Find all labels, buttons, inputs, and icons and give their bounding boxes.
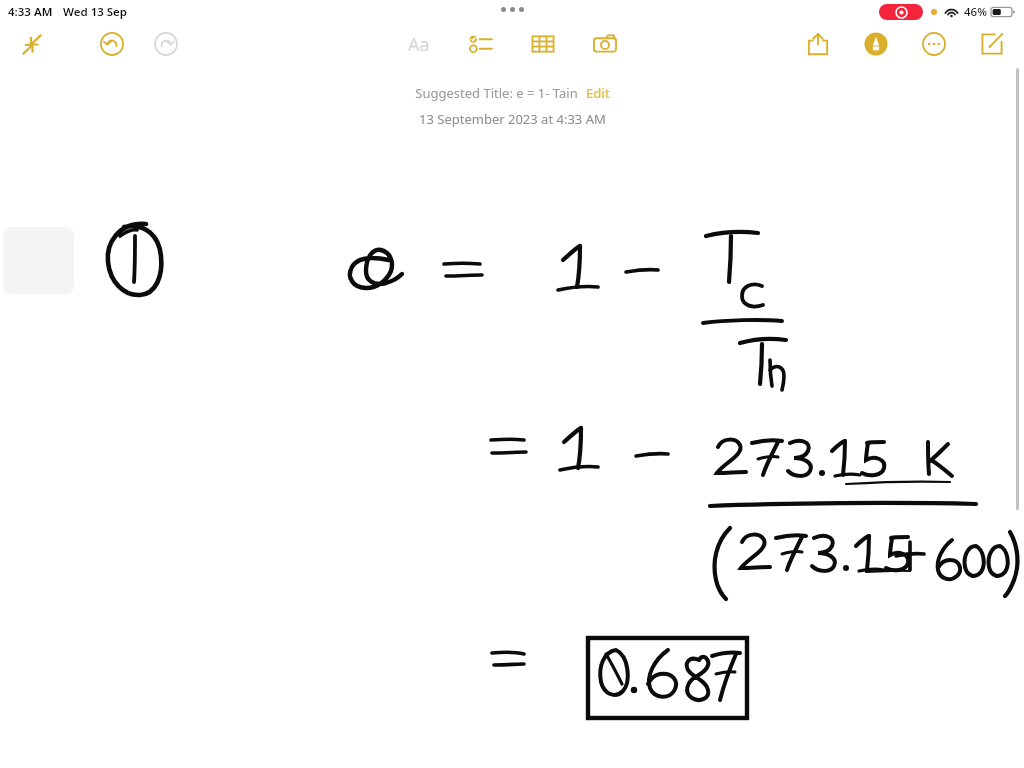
other: Screen recording [879, 4, 923, 20]
staticText: Wed 13 Sep [63, 4, 128, 20]
staticText: Aa [408, 32, 430, 57]
button[interactable]: Undo [94, 26, 130, 62]
button[interactable]: Edit [586, 84, 610, 102]
button[interactable]: Collapse [14, 26, 50, 62]
button[interactable]: Table [525, 26, 561, 62]
button[interactable]: Camera [587, 26, 623, 62]
staticText: 13 September 2023 at 4:33 AM [419, 110, 606, 128]
staticText: 4:33 AM [8, 4, 53, 20]
staticText: 46% [964, 4, 987, 20]
button[interactable]: New note [974, 26, 1010, 62]
staticText: Suggested Title: e = 1- Tain [415, 84, 578, 102]
button[interactable]: Share [800, 26, 836, 62]
button[interactable]: Text format [401, 26, 437, 62]
button[interactable]: More [916, 26, 952, 62]
button[interactable]: Markup [858, 26, 894, 62]
button[interactable]: Redo [148, 26, 184, 62]
button[interactable]: Checklist [463, 26, 499, 62]
staticText: Edit [586, 84, 610, 102]
